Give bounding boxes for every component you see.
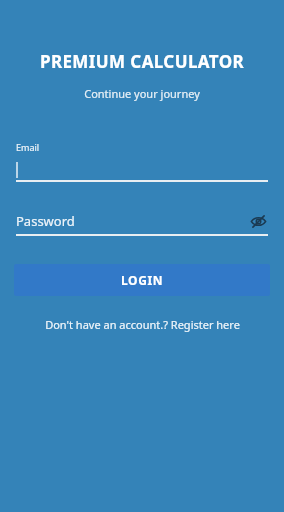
staticText: Continue your journey <box>0 86 284 101</box>
staticText: Password <box>16 212 248 230</box>
button[interactable]: LOGIN <box>14 264 270 296</box>
button[interactable]: Password <box>16 211 268 236</box>
staticText: Don't have an account.? Register here <box>45 317 240 332</box>
button[interactable]: Don't have an account.? Register here <box>0 317 284 332</box>
staticText: Email <box>16 141 40 153</box>
staticText: LOGIN <box>121 272 164 288</box>
button[interactable]: Show password <box>248 211 268 231</box>
staticText: PREMIUM CALCULATOR <box>0 50 284 73</box>
button[interactable]: Email <box>16 141 268 182</box>
